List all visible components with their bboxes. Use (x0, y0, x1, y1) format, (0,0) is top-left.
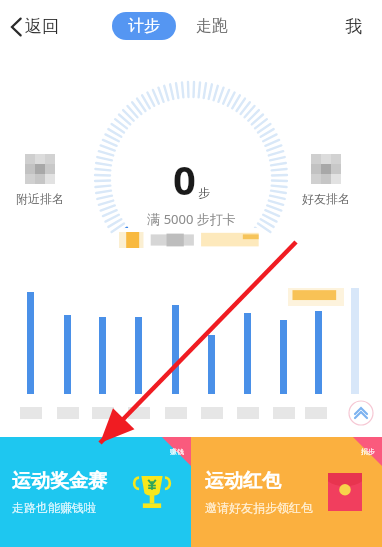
staticText: 满 5000 步打卡 (147, 210, 236, 228)
button[interactable]: 附近排名 (14, 152, 66, 208)
button[interactable]: 加速 (348, 400, 374, 426)
staticText: 计步 (128, 16, 160, 36)
staticText: 0 (173, 152, 196, 206)
button[interactable]: 我 (339, 10, 368, 43)
staticText: 运动奖金赛 (12, 469, 107, 493)
button[interactable]: 计步 (112, 12, 176, 40)
staticText: 返回 (25, 16, 59, 37)
button[interactable]: 运动红包 (191, 437, 382, 547)
button[interactable]: 走跑 (190, 12, 234, 40)
staticText: 走路也能赚钱啦 (12, 500, 96, 515)
staticText: 赚钱 (170, 447, 184, 456)
staticText: 捐步 (361, 447, 375, 456)
button[interactable]: 返回 (6, 10, 63, 43)
staticText: 邀请好友捐步领红包 (205, 500, 313, 515)
staticText: 步 (198, 185, 210, 200)
button[interactable] (113, 228, 269, 252)
staticText: 走跑 (196, 16, 228, 36)
button[interactable]: 好友排名 (300, 152, 352, 208)
staticText: 运动红包 (205, 469, 281, 493)
button[interactable]: 运动奖金赛 (0, 437, 191, 547)
staticText: 好友排名 (302, 191, 350, 206)
staticText: 附近排名 (16, 191, 64, 206)
staticText: 我 (345, 16, 362, 37)
